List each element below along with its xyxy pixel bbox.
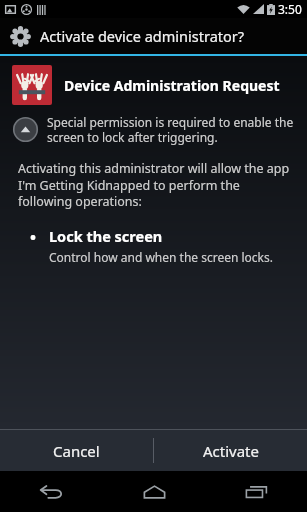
- staticText: Activate device administrator?: [40, 26, 245, 46]
- button[interactable]: Back: [0, 471, 103, 512]
- button[interactable]: Collapse details: [0, 114, 307, 145]
- staticText: Cancel: [53, 441, 100, 461]
- staticText: Lock the screen: [49, 226, 163, 246]
- button[interactable]: Cancel: [0, 430, 153, 471]
- staticText: 3:50: [278, 1, 302, 17]
- staticText: Special permission is required to enable…: [47, 114, 299, 145]
- button[interactable]: Recent apps: [205, 471, 307, 512]
- staticText: Device Administration Request: [64, 76, 280, 95]
- staticText: Activating this administrator will allow…: [18, 160, 291, 209]
- other: Collapse details: [13, 117, 38, 142]
- button[interactable]: Activate: [154, 430, 307, 471]
- button[interactable]: Home: [103, 471, 205, 512]
- staticText: Control how and when the screen locks.: [49, 249, 273, 265]
- staticText: Activate: [203, 441, 259, 461]
- staticText: •: [30, 226, 37, 248]
